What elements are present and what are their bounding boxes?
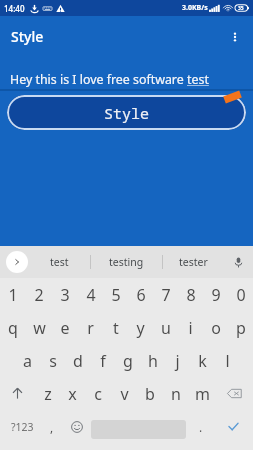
staticText: 5 xyxy=(111,284,121,306)
button[interactable]: tester xyxy=(163,246,224,278)
button[interactable]: ?123 xyxy=(0,410,39,443)
button[interactable]: test xyxy=(28,246,90,278)
staticText: a xyxy=(23,350,32,372)
button[interactable]: p xyxy=(228,311,253,344)
staticText: j xyxy=(175,350,180,372)
staticText: 7 xyxy=(161,284,171,306)
button[interactable]: 3 xyxy=(52,278,78,311)
staticText: v xyxy=(120,383,129,405)
staticText: 3.0KB/s xyxy=(182,3,208,13)
button[interactable]: k xyxy=(190,344,215,377)
staticText: d xyxy=(73,350,83,372)
button[interactable]: y xyxy=(128,311,153,344)
staticText: 14:40 xyxy=(4,3,25,14)
staticText: n xyxy=(171,383,181,405)
button[interactable]: 5 xyxy=(103,278,128,311)
staticText: test xyxy=(187,71,209,88)
button[interactable]: Enter xyxy=(213,410,253,443)
button[interactable]: Style xyxy=(7,95,246,130)
button[interactable]: 7 xyxy=(153,278,178,311)
staticText: t xyxy=(113,317,119,339)
button[interactable]: e xyxy=(52,311,78,344)
staticText: p xyxy=(236,317,246,339)
staticText: 3 xyxy=(60,284,70,306)
button[interactable]: s xyxy=(40,344,65,377)
button[interactable]: Shift xyxy=(0,377,35,410)
staticText: 9 xyxy=(211,284,221,306)
staticText: w xyxy=(33,317,46,339)
button[interactable]: g xyxy=(115,344,140,377)
button[interactable]: z xyxy=(35,377,60,410)
button[interactable]: q xyxy=(0,311,26,344)
staticText: q xyxy=(8,317,18,339)
button[interactable]: m xyxy=(189,377,215,410)
staticText: 0 xyxy=(236,284,246,306)
button[interactable]: Backspace xyxy=(215,377,253,410)
staticText: Hey this is I love free software xyxy=(10,71,187,88)
staticText: b xyxy=(145,383,155,405)
button[interactable]: a xyxy=(14,344,40,377)
staticText: tester xyxy=(179,255,208,269)
button[interactable]: x xyxy=(60,377,85,410)
button[interactable]: testing xyxy=(91,246,162,278)
button[interactable]: c xyxy=(85,377,111,410)
staticText: , xyxy=(50,419,54,435)
staticText: 8 xyxy=(186,284,196,306)
staticText: 2 xyxy=(34,284,44,306)
button[interactable]: u xyxy=(153,311,178,344)
staticText: m xyxy=(195,383,210,405)
button[interactable]: h xyxy=(140,344,165,377)
button[interactable]: r xyxy=(78,311,103,344)
button[interactable]: Voice input xyxy=(224,246,253,278)
button[interactable]: j xyxy=(165,344,190,377)
button[interactable]: d xyxy=(65,344,90,377)
staticText: h xyxy=(148,350,158,372)
button[interactable]: 2 xyxy=(26,278,52,311)
button[interactable]: l xyxy=(215,344,240,377)
button[interactable]: 9 xyxy=(203,278,228,311)
staticText: Style xyxy=(104,103,150,123)
button[interactable]: 4 xyxy=(78,278,103,311)
staticText: g xyxy=(123,350,133,372)
button[interactable]: 0 xyxy=(228,278,253,311)
staticText: 1 xyxy=(8,284,18,306)
button[interactable]: Emoji xyxy=(64,410,89,443)
staticText: Style xyxy=(11,27,44,46)
staticText: x xyxy=(68,383,77,405)
staticText: ?123 xyxy=(11,420,34,434)
staticText: k xyxy=(198,350,207,372)
button[interactable]: n xyxy=(163,377,189,410)
button[interactable]: . xyxy=(188,410,213,443)
button[interactable]: f xyxy=(90,344,115,377)
staticText: 4 xyxy=(86,284,96,306)
staticText: z xyxy=(44,383,52,405)
staticText: u xyxy=(161,317,171,339)
staticText: testing xyxy=(109,255,144,269)
staticText: . xyxy=(199,419,203,435)
staticText: e xyxy=(60,317,70,339)
button[interactable]: 6 xyxy=(128,278,153,311)
button[interactable]: v xyxy=(111,377,137,410)
staticText: 35 xyxy=(238,5,244,12)
button[interactable]: 8 xyxy=(178,278,203,311)
staticText: o xyxy=(211,317,221,339)
button[interactable]: o xyxy=(203,311,228,344)
staticText: test xyxy=(50,255,69,269)
staticText: l xyxy=(225,350,230,372)
button[interactable]: More options xyxy=(217,19,253,55)
button[interactable]: w xyxy=(26,311,52,344)
button[interactable]: i xyxy=(178,311,203,344)
staticText: f xyxy=(100,350,106,372)
staticText: y xyxy=(136,317,145,339)
button[interactable]: t xyxy=(103,311,128,344)
staticText: r xyxy=(87,317,94,339)
button[interactable]: b xyxy=(137,377,163,410)
staticText: s xyxy=(49,350,57,372)
staticText: c xyxy=(94,383,102,405)
button[interactable]: 1 xyxy=(0,278,26,311)
staticText: i xyxy=(188,317,193,339)
button[interactable]: , xyxy=(39,410,64,443)
button[interactable]: Expand xyxy=(6,251,28,273)
staticText: 6 xyxy=(136,284,146,306)
